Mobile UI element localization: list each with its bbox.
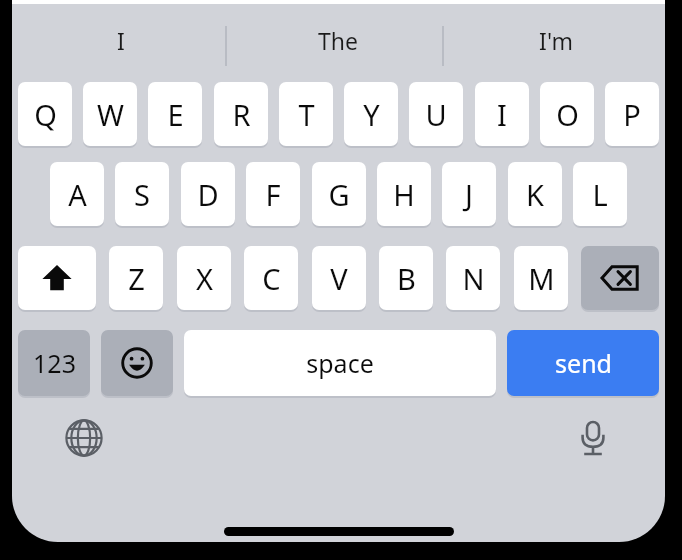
button[interactable]: Z: [109, 246, 163, 310]
staticText: L: [592, 175, 608, 214]
staticText: I: [497, 95, 507, 134]
staticText: send: [555, 346, 612, 380]
staticText: X: [196, 259, 213, 298]
staticText: M: [528, 259, 555, 298]
button[interactable]: F: [246, 162, 300, 226]
button[interactable]: Emoji: [101, 330, 173, 396]
button[interactable]: Backspace: [581, 246, 659, 310]
button[interactable]: X: [177, 246, 231, 310]
staticText: space: [306, 346, 374, 380]
button[interactable]: Y: [344, 82, 398, 146]
button[interactable]: R: [214, 82, 268, 146]
staticText: 123: [33, 346, 76, 380]
button[interactable]: Switch keyboard: [58, 412, 110, 464]
button[interactable]: B: [379, 246, 433, 310]
staticText: K: [526, 175, 544, 214]
button[interactable]: A: [50, 162, 104, 226]
staticText: G: [328, 175, 350, 214]
button[interactable]: E: [148, 82, 202, 146]
button[interactable]: W: [83, 82, 137, 146]
button[interactable]: U: [409, 82, 463, 146]
button[interactable]: H: [377, 162, 431, 226]
staticText: R: [232, 95, 251, 134]
staticText: T: [298, 95, 315, 134]
button[interactable]: M: [514, 246, 568, 310]
button[interactable]: N: [446, 246, 500, 310]
button[interactable]: S: [115, 162, 169, 226]
button[interactable]: Dictate: [567, 412, 619, 464]
button[interactable]: I: [475, 82, 529, 146]
staticText: A: [68, 175, 87, 214]
staticText: D: [197, 175, 219, 214]
staticText: V: [330, 259, 348, 298]
staticText: J: [465, 175, 473, 214]
staticText: F: [265, 175, 281, 214]
staticText: The: [318, 25, 358, 56]
staticText: N: [462, 259, 485, 298]
button[interactable]: T: [279, 82, 333, 146]
button[interactable]: send: [507, 330, 659, 396]
button[interactable]: Q: [18, 82, 72, 146]
staticText: S: [134, 175, 150, 214]
staticText: I: [117, 25, 125, 56]
button[interactable]: O: [540, 82, 594, 146]
staticText: Y: [363, 95, 380, 134]
button[interactable]: C: [244, 246, 298, 310]
button[interactable]: J: [442, 162, 496, 226]
staticText: E: [167, 95, 184, 134]
button[interactable]: G: [312, 162, 366, 226]
button[interactable]: L: [573, 162, 627, 226]
staticText: B: [397, 259, 416, 298]
staticText: C: [262, 259, 281, 298]
button[interactable]: space: [184, 330, 496, 396]
button[interactable]: K: [508, 162, 562, 226]
staticText: W: [97, 95, 124, 134]
button[interactable]: The: [229, 4, 447, 76]
button[interactable]: I'm: [447, 4, 665, 76]
staticText: P: [623, 95, 641, 134]
staticText: Z: [128, 259, 145, 298]
button[interactable]: I: [12, 4, 229, 76]
button[interactable]: V: [312, 246, 366, 310]
staticText: H: [393, 175, 415, 214]
staticText: O: [556, 95, 579, 134]
button[interactable]: Shift: [18, 246, 96, 310]
button[interactable]: 123: [18, 330, 90, 396]
button[interactable]: P: [605, 82, 659, 146]
button[interactable]: D: [181, 162, 235, 226]
staticText: U: [425, 95, 447, 134]
staticText: I'm: [539, 25, 573, 56]
staticText: Q: [34, 95, 57, 134]
